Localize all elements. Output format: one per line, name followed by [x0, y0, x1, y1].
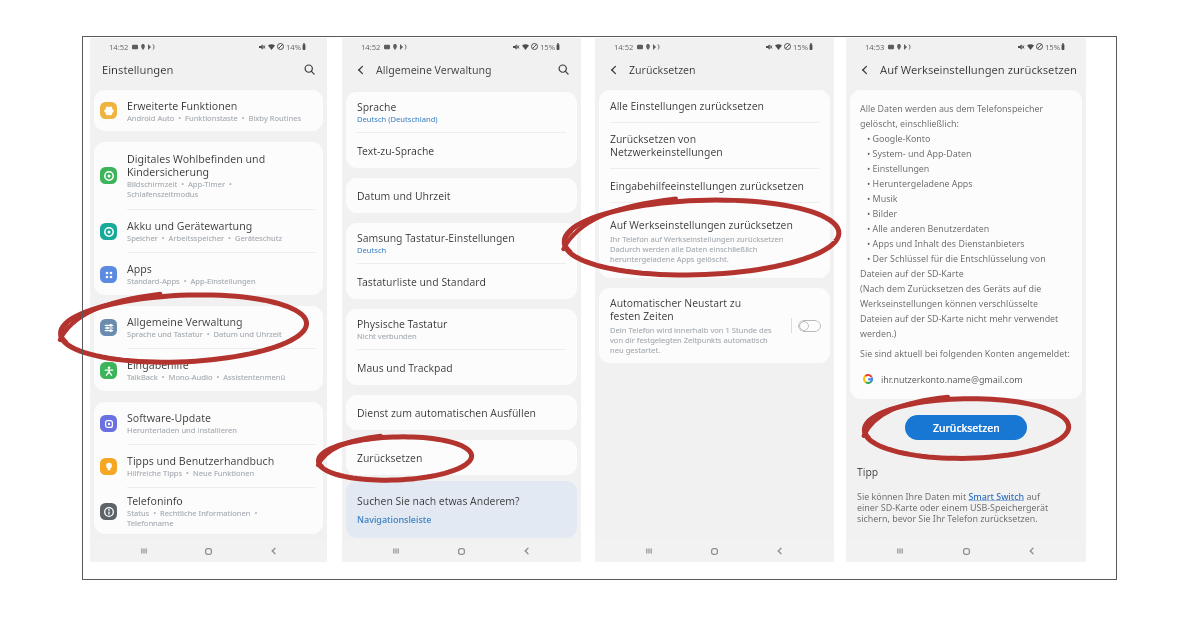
button[interactable]: Letzte Apps — [867, 540, 933, 562]
staticText: Samsung Tastatur-Einstellungen — [357, 231, 515, 245]
staticText: Alle Einstellungen zurücksetzen — [610, 99, 764, 113]
button[interactable]: Ein/Aus — [798, 320, 821, 332]
button[interactable]: Sprache — [346, 92, 577, 132]
staticText: 14:53 — [865, 42, 885, 52]
staticText: Tipps und Benutzerhandbuch — [127, 454, 275, 468]
staticText: Allgemeine Verwaltung — [376, 63, 492, 77]
staticText: Sprache — [357, 100, 397, 114]
staticText: Bildschirmzeit • App-Timer • Schlafensze… — [127, 179, 232, 199]
button[interactable]: Akku und Gerätewartung — [94, 210, 323, 252]
button[interactable]: Tipps und Benutzerhandbuch — [94, 445, 323, 487]
staticText: 14:52 — [361, 42, 381, 52]
staticText: Automatischer Neustart zu festen Zeiten — [610, 296, 742, 323]
staticText: Sie können Ihre Daten mit Smart Switch a… — [857, 490, 1049, 525]
staticText: Status • Rechtliche Informationen • Tele… — [127, 508, 258, 528]
staticText: ihr.nutzerkonto.name@gmail.com — [881, 373, 1023, 385]
staticText: Maus und Trackpad — [357, 361, 453, 375]
button[interactable]: Suchen — [555, 61, 572, 78]
button[interactable]: Erweiterte Funktionen — [94, 90, 323, 131]
staticText: 14:52 — [109, 42, 129, 52]
staticText: Sprache und Tastatur • Datum und Uhrzeit — [127, 329, 282, 339]
button[interactable]: Zurück — [747, 540, 813, 562]
staticText: Android Auto • Funktionstaste • Bixby Ro… — [127, 113, 302, 123]
staticText: Physische Tastatur — [357, 317, 448, 331]
button[interactable]: Startbildschirm — [681, 540, 747, 562]
button[interactable]: Maus und Trackpad — [346, 350, 577, 385]
staticText: Deutsch — [357, 245, 387, 255]
staticText: Telefoninfo — [127, 494, 183, 508]
button[interactable]: Zurück — [494, 540, 560, 562]
button[interactable]: Auf Werkseinstellungen zurücksetzen — [599, 203, 830, 278]
button[interactable]: Startbildschirm — [933, 540, 999, 562]
button[interactable]: Zurücksetzen — [905, 415, 1027, 440]
staticText: 15% — [793, 42, 808, 52]
staticText: Einstellungen — [102, 62, 174, 77]
staticText: Zurücksetzen — [357, 451, 423, 465]
button[interactable]: Telefoninfo — [94, 488, 323, 534]
staticText: Deutsch (Deutschland) — [357, 114, 438, 124]
staticText: Zurücksetzen — [933, 421, 1000, 435]
staticText: Tipp — [857, 465, 879, 479]
button[interactable]: Eingabehilfeeinstellungen zurücksetzen — [599, 169, 830, 202]
button[interactable]: Suchen Sie nach etwas Anderem? — [346, 481, 577, 538]
staticText: Apps — [127, 262, 152, 276]
button[interactable]: Suchen — [301, 61, 318, 78]
staticText: Software-Update — [127, 411, 212, 425]
button[interactable]: Apps — [94, 253, 323, 295]
staticText: Ihr Telefon auf Werkseinstellungen zurüc… — [610, 234, 784, 264]
staticText: Suchen Sie nach etwas Anderem? — [357, 494, 520, 508]
button[interactable]: Automatischer Neustart zu festen Zeiten — [599, 288, 830, 363]
button[interactable]: Alle Einstellungen zurücksetzen — [599, 90, 830, 122]
button[interactable]: Zurück — [999, 540, 1065, 562]
staticText: Speicher • Arbeitsspeicher • Geräteschut… — [127, 233, 282, 243]
staticText: Erweiterte Funktionen — [127, 99, 238, 113]
staticText: Nicht verbunden — [357, 331, 417, 341]
button[interactable]: Letzte Apps — [363, 540, 428, 562]
button[interactable]: Startbildschirm — [176, 540, 241, 562]
staticText: 14% — [286, 42, 301, 52]
staticText: TalkBack • Mono-Audio • Assistentenmenü — [127, 372, 286, 382]
staticText: Dienst zum automatischen Ausfüllen — [357, 406, 537, 420]
button[interactable]: Startbildschirm — [428, 540, 494, 562]
staticText: Zurücksetzen von Netzwerkeinstellungen — [610, 132, 723, 159]
staticText: Text-zu-Sprache — [357, 144, 435, 158]
staticText: Auf Werkseinstellungen zurücksetzen — [880, 62, 1077, 77]
button[interactable]: Letzte Apps — [616, 540, 681, 562]
staticText: Digitales Wohlbefinden und Kindersicheru… — [127, 152, 266, 179]
staticText: Eingabehilfeeinstellungen zurücksetzen — [610, 179, 805, 193]
staticText: Hilfreiche Tipps • Neue Funktionen — [127, 468, 255, 478]
staticText: Herunterladen und installieren — [127, 425, 237, 435]
staticText: Navigationsleiste — [357, 513, 432, 525]
staticText: Datum und Uhrzeit — [357, 189, 451, 203]
staticText: 14:52 — [614, 42, 634, 52]
button[interactable]: Datum und Uhrzeit — [346, 178, 577, 213]
staticText: 15% — [540, 42, 555, 52]
button[interactable]: Samsung Tastatur-Einstellungen — [346, 223, 577, 263]
staticText: Dein Telefon wird innerhalb von 1 Stunde… — [610, 325, 772, 355]
button[interactable]: Allgemeine Verwaltung — [94, 306, 323, 348]
button[interactable]: Dienst zum automatischen Ausfüllen — [346, 395, 577, 430]
button[interactable]: Physische Tastatur — [346, 309, 577, 349]
button[interactable]: Zurück — [856, 61, 873, 78]
staticText: Zurücksetzen — [629, 63, 696, 77]
button[interactable]: Software-Update — [94, 402, 323, 444]
button[interactable]: Zurück — [241, 540, 306, 562]
staticText: Eingabehilfe — [127, 358, 189, 372]
staticText: 15% — [1045, 42, 1060, 52]
staticText: Tastaturliste und Standard — [357, 275, 486, 289]
staticText: Alle Daten werden aus dem Telefonspeiche… — [860, 102, 1059, 340]
button[interactable]: Digitales Wohlbefinden und Kindersicheru… — [94, 142, 323, 209]
staticText: Standard-Apps • App-Einstellungen — [127, 276, 256, 286]
button[interactable]: Zurück — [352, 61, 369, 78]
staticText: Sie sind aktuell bei folgenden Konten an… — [860, 347, 1070, 359]
button[interactable]: Text-zu-Sprache — [346, 133, 577, 168]
button[interactable]: Letzte Apps — [111, 540, 176, 562]
staticText: Allgemeine Verwaltung — [127, 315, 243, 329]
button[interactable]: Tastaturliste und Standard — [346, 264, 577, 299]
button[interactable]: Zurücksetzen von Netzwerkeinstellungen — [599, 123, 830, 168]
staticText: Akku und Gerätewartung — [127, 219, 253, 233]
staticText: Auf Werkseinstellungen zurücksetzen — [610, 218, 793, 232]
button[interactable]: Zurück — [605, 61, 622, 78]
button[interactable]: Zurücksetzen — [346, 440, 577, 475]
button[interactable]: Eingabehilfe — [94, 349, 323, 391]
